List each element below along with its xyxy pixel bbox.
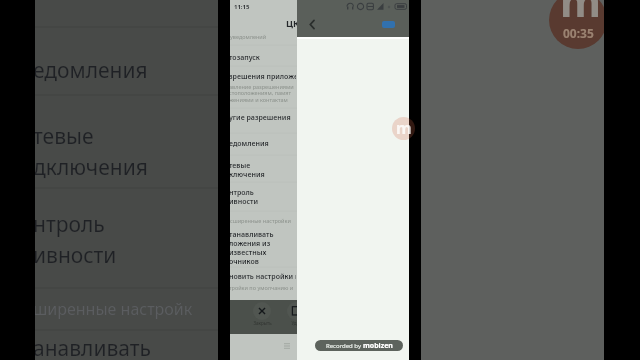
staticText: 00:35 — [563, 25, 594, 41]
staticText: едомления — [230, 139, 296, 149]
staticText: ширенные настройк — [35, 298, 216, 320]
button[interactable]: Action — [376, 18, 400, 30]
button[interactable]: Recents — [281, 340, 293, 352]
button[interactable]: Mobizen recording timer — [549, 0, 604, 49]
staticText: зрешения приложе — [230, 72, 296, 82]
button[interactable]: Закрыть — [247, 302, 277, 332]
staticText: нтроль ивности — [35, 210, 216, 269]
button[interactable]: Удал — [281, 302, 297, 332]
staticText: тозапуск — [230, 53, 296, 63]
staticText: mobizen — [363, 341, 393, 351]
staticText: Recorded by — [326, 342, 363, 350]
staticText: нтроль ивности — [230, 188, 296, 206]
staticText: новить настройки по — [230, 272, 296, 282]
staticText: сширенные настройки — [230, 217, 297, 224]
staticText: Закрыть — [253, 320, 272, 326]
staticText: авление разрешениями стоположениям, памя… — [230, 83, 296, 104]
staticText: Удал — [291, 320, 297, 326]
staticText: уведомлений — [230, 33, 297, 40]
staticText: едомления — [35, 56, 216, 85]
staticText: угие разрешения — [230, 113, 296, 123]
button[interactable]: Back — [303, 15, 321, 33]
staticText: анавливать — [35, 334, 216, 360]
staticText: m — [560, 0, 601, 29]
button[interactable]: Mobizen recorder — [392, 117, 415, 140]
staticText: ЦК — [286, 17, 297, 29]
staticText: 11:15 — [234, 3, 250, 11]
staticText: тевые дключения — [35, 122, 216, 181]
staticText: тройки по умолчанию и — [230, 284, 296, 291]
staticText: m — [396, 117, 412, 139]
staticText: тевые ключения — [230, 161, 296, 179]
staticText: танавливать ложения из известных очников — [230, 230, 296, 266]
